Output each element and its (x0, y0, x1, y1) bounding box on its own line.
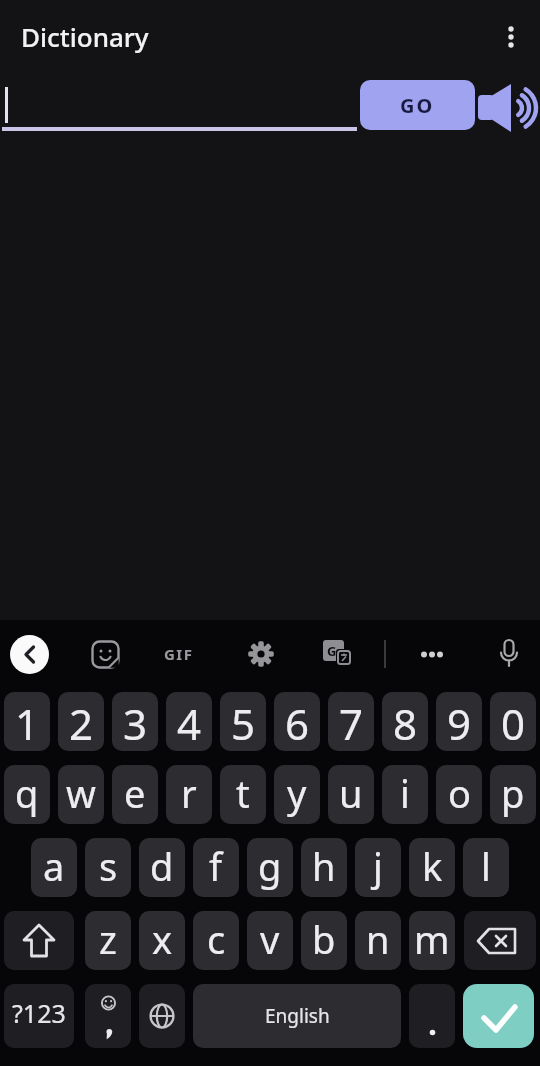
staticText: u (339, 767, 363, 819)
staticText: 6 (285, 695, 310, 751)
button[interactable]: d (139, 838, 185, 897)
button[interactable]: 7 (328, 692, 374, 751)
staticText: 8 (393, 695, 418, 751)
button[interactable]: w (58, 765, 104, 824)
button[interactable]: u (328, 765, 374, 824)
button[interactable]: 8 (382, 692, 428, 751)
staticText: 9 (447, 695, 472, 751)
button[interactable] (246, 639, 276, 669)
button[interactable]: o (436, 765, 482, 824)
staticText: Dictionary (21, 19, 149, 54)
staticText: t (236, 767, 250, 819)
staticText: c (207, 913, 226, 965)
staticText: p (501, 767, 525, 819)
button[interactable]: English (193, 984, 401, 1048)
button[interactable]: p (490, 765, 536, 824)
staticText: l (481, 840, 491, 892)
staticText: b (312, 913, 336, 965)
staticText: v (260, 913, 280, 965)
staticText: GIF (164, 644, 194, 664)
button[interactable]: GIF (158, 638, 200, 670)
staticText: English (265, 1003, 330, 1029)
button[interactable]: y (274, 765, 320, 824)
button[interactable]: j (355, 838, 401, 897)
button[interactable]: 1 (4, 692, 50, 751)
button[interactable]: z (85, 911, 131, 970)
staticText: d (150, 840, 174, 892)
button[interactable]: GO (360, 80, 475, 130)
button[interactable]: ?123 (4, 984, 74, 1048)
button[interactable] (10, 635, 49, 674)
staticText: f (209, 840, 223, 892)
button[interactable]: x (139, 911, 185, 970)
staticText: g (258, 840, 282, 892)
button[interactable] (463, 984, 534, 1048)
staticText: a (43, 840, 65, 892)
staticText: y (287, 767, 307, 819)
button[interactable]: b (301, 911, 347, 970)
button[interactable]: q (4, 765, 50, 824)
staticText: x (152, 913, 173, 965)
staticText: i (400, 767, 410, 819)
staticText: 1 (15, 695, 40, 751)
staticText: ?123 (12, 996, 66, 1030)
button[interactable]: k (409, 838, 455, 897)
staticText: 7 (339, 695, 364, 751)
button[interactable]: 4 (166, 692, 212, 751)
staticText: w (66, 767, 96, 819)
button[interactable]: 5 (220, 692, 266, 751)
button[interactable]: v (247, 911, 293, 970)
button[interactable]: g (247, 838, 293, 897)
staticText: 4 (177, 695, 202, 751)
button[interactable]: 0 (490, 692, 536, 751)
button[interactable]: 3 (112, 692, 158, 751)
button[interactable]: 9 (436, 692, 482, 751)
staticText: 3 (123, 695, 148, 751)
staticText: e (124, 767, 146, 819)
staticText: r (181, 767, 197, 819)
button[interactable]: t (220, 765, 266, 824)
staticText: 2 (69, 695, 94, 751)
button[interactable]: c (193, 911, 239, 970)
button[interactable]: r (166, 765, 212, 824)
button[interactable]: l (463, 838, 509, 897)
button[interactable]: s (85, 838, 131, 897)
button[interactable] (85, 984, 131, 1048)
button[interactable]: e (112, 765, 158, 824)
button[interactable] (91, 640, 120, 669)
button[interactable] (476, 78, 540, 140)
button[interactable]: 2 (58, 692, 104, 751)
button[interactable] (464, 911, 536, 970)
button[interactable] (409, 984, 455, 1048)
button[interactable] (4, 911, 74, 970)
button[interactable]: m (409, 911, 455, 970)
button[interactable]: n (355, 911, 401, 970)
staticText: 5 (231, 695, 256, 751)
staticText: s (99, 840, 118, 892)
staticText: k (422, 840, 443, 892)
button[interactable]: G (322, 639, 356, 671)
staticText: m (414, 913, 450, 965)
staticText: G (327, 642, 337, 660)
button[interactable]: 6 (274, 692, 320, 751)
staticText: o (448, 767, 471, 819)
button[interactable] (414, 640, 450, 668)
staticText: n (366, 913, 390, 965)
button[interactable] (495, 638, 523, 670)
button[interactable]: f (193, 838, 239, 897)
button[interactable]: i (382, 765, 428, 824)
staticText: j (373, 840, 383, 892)
staticText: h (312, 840, 336, 892)
staticText: q (15, 767, 39, 819)
button[interactable]: h (301, 838, 347, 897)
button[interactable]: a (31, 838, 77, 897)
button[interactable] (499, 17, 523, 57)
staticText: z (99, 913, 117, 965)
button[interactable] (139, 984, 185, 1048)
staticText: GO (400, 92, 435, 119)
staticText: 0 (501, 695, 526, 751)
